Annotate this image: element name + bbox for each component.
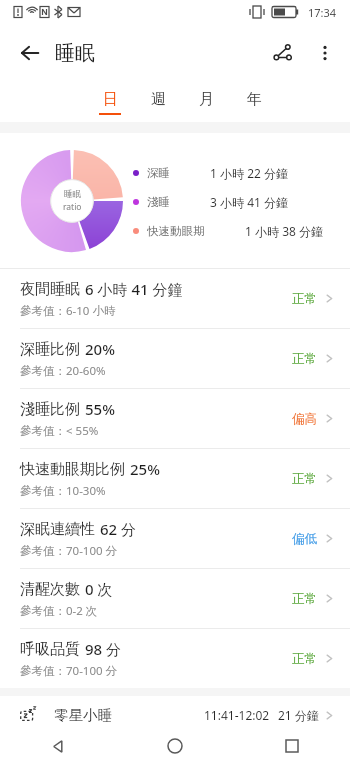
button[interactable]: 夜間睡眠 bbox=[0, 269, 350, 329]
staticText: 深睡比例 bbox=[20, 340, 80, 359]
button[interactable]: Back bbox=[10, 33, 50, 73]
staticText: 參考值：0-2 次 bbox=[20, 603, 98, 619]
staticText: 睡眠 bbox=[55, 41, 95, 66]
staticText: 參考值：< 55% bbox=[20, 423, 99, 439]
staticText: 正常 bbox=[292, 651, 317, 667]
staticText: 週 bbox=[151, 90, 166, 109]
staticText: 11:41-12:02 bbox=[204, 707, 270, 723]
staticText: 55% bbox=[85, 399, 115, 419]
button[interactable]: 年 bbox=[230, 82, 278, 122]
staticText: 21 分鐘 bbox=[278, 707, 319, 723]
staticText: 參考值：20-60% bbox=[20, 363, 106, 379]
button[interactable]: 日 bbox=[86, 82, 134, 122]
button[interactable]: Home bbox=[116, 734, 233, 758]
button[interactable]: 深眠連續性 bbox=[0, 509, 350, 569]
staticText: 清醒次數 bbox=[20, 580, 80, 599]
button[interactable]: 清醒次數 bbox=[0, 569, 350, 629]
staticText: 6 小時 41 分鐘 bbox=[85, 279, 183, 299]
button[interactable]: 週 bbox=[134, 82, 182, 122]
staticText: 25% bbox=[130, 459, 160, 479]
staticText: 快速動眼期比例 bbox=[20, 460, 125, 479]
staticText: 睡眠 bbox=[64, 189, 81, 200]
button[interactable]: 呼吸品質 bbox=[0, 629, 350, 688]
staticText: 呼吸品質 bbox=[20, 640, 80, 659]
button[interactable]: 月 bbox=[182, 82, 230, 122]
staticText: 3 小時 41 分鐘 bbox=[210, 194, 288, 210]
staticText: 月 bbox=[199, 90, 214, 109]
staticText: 偏低 bbox=[292, 531, 317, 547]
staticText: 20% bbox=[85, 339, 115, 359]
staticText: 正常 bbox=[292, 351, 317, 367]
button[interactable]: 零星小睡 bbox=[0, 696, 350, 734]
staticText: 98 分 bbox=[85, 639, 122, 659]
button[interactable]: Back bbox=[0, 734, 116, 758]
staticText: 1 小時 38 分鐘 bbox=[245, 223, 323, 239]
button[interactable]: More options bbox=[304, 32, 346, 74]
staticText: 參考值：70-100 分 bbox=[20, 543, 118, 559]
staticText: 深眠連續性 bbox=[20, 520, 95, 539]
staticText: 正常 bbox=[292, 291, 317, 307]
staticText: 1 小時 22 分鐘 bbox=[210, 165, 288, 181]
staticText: 快速動眼期 bbox=[147, 224, 205, 238]
button[interactable]: 淺睡比例 bbox=[0, 389, 350, 449]
staticText: ratio bbox=[63, 201, 82, 213]
button[interactable]: Recent apps bbox=[233, 734, 350, 758]
button[interactable]: 快速動眼期比例 bbox=[0, 449, 350, 509]
button[interactable]: 深睡比例 bbox=[0, 329, 350, 389]
staticText: 參考值：6-10 小時 bbox=[20, 303, 116, 319]
staticText: 夜間睡眠 bbox=[20, 280, 80, 299]
staticText: 年 bbox=[247, 90, 262, 109]
staticText: 17:34 bbox=[308, 5, 337, 20]
staticText: 參考值：70-100 分 bbox=[20, 663, 118, 679]
staticText: 零星小睡 bbox=[54, 706, 112, 724]
staticText: 深睡 bbox=[147, 166, 170, 180]
staticText: 正常 bbox=[292, 591, 317, 607]
staticText: 參考值：10-30% bbox=[20, 483, 106, 499]
staticText: 62 分 bbox=[100, 519, 137, 539]
staticText: 淺睡 bbox=[147, 195, 170, 209]
staticText: 日 bbox=[103, 90, 118, 109]
staticText: 偏高 bbox=[292, 411, 317, 427]
staticText: 正常 bbox=[292, 471, 317, 487]
staticText: 淺睡比例 bbox=[20, 400, 80, 419]
button[interactable]: Share bbox=[262, 32, 304, 74]
staticText: 0 次 bbox=[85, 579, 113, 599]
